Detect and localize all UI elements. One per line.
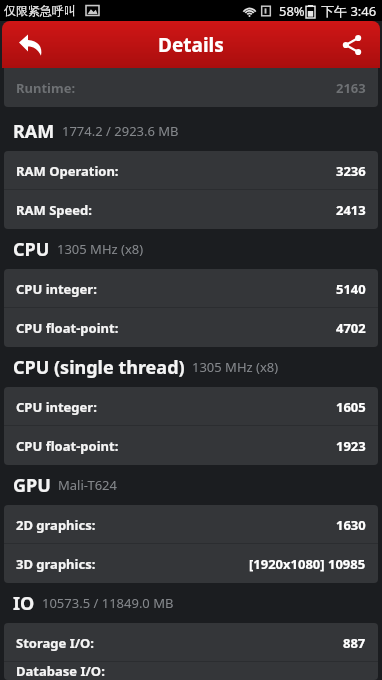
staticText: 下午 3:46 bbox=[321, 2, 377, 20]
button[interactable]: RAM Speed: bbox=[4, 190, 378, 229]
staticText: 58% bbox=[279, 2, 305, 20]
staticText: RAM Speed: bbox=[16, 201, 92, 219]
staticText: CPU float-point: bbox=[16, 437, 119, 455]
staticText: Mali-T624 bbox=[58, 476, 117, 494]
staticText: 887 bbox=[343, 634, 366, 652]
staticText: 1774.2 / 2923.6 MB bbox=[62, 122, 179, 140]
staticText: 1923 bbox=[336, 437, 366, 455]
staticText: 仅限紧急呼叫 bbox=[4, 3, 76, 18]
staticText: 1305 MHz (x8) bbox=[57, 240, 144, 258]
staticText: Storage I/O: bbox=[16, 634, 95, 652]
staticText: CPU (single thread) bbox=[13, 355, 185, 380]
button[interactable]: Storage I/O: bbox=[4, 623, 378, 662]
staticText: RAM Operation: bbox=[16, 162, 119, 180]
button[interactable]: CPU integer: bbox=[4, 387, 378, 426]
button[interactable]: Database I/O: bbox=[4, 662, 378, 680]
staticText: Runtime: bbox=[16, 79, 76, 97]
staticText: Details bbox=[158, 32, 224, 58]
button[interactable]: 3D graphics: bbox=[4, 544, 378, 583]
button[interactable]: CPU integer: bbox=[4, 269, 378, 308]
staticText: RAM bbox=[13, 119, 55, 144]
staticText: 4702 bbox=[336, 319, 366, 337]
staticText: CPU bbox=[13, 237, 50, 262]
staticText: 1605 bbox=[336, 398, 366, 416]
button[interactable]: CPU float-point: bbox=[4, 308, 378, 347]
button[interactable]: 2D graphics: bbox=[4, 505, 378, 544]
staticText: 1630 bbox=[336, 516, 366, 534]
staticText: GPU bbox=[13, 473, 51, 498]
staticText: 2413 bbox=[336, 201, 366, 219]
button[interactable]: Runtime: bbox=[4, 68, 378, 107]
button[interactable]: Share bbox=[324, 21, 380, 68]
staticText: 10573.5 / 11849.0 MB bbox=[42, 594, 174, 612]
staticText: IO bbox=[13, 591, 35, 616]
staticText: 5140 bbox=[336, 280, 366, 298]
staticText: 2163 bbox=[336, 79, 366, 97]
staticText: 2D graphics: bbox=[16, 516, 96, 534]
staticText: CPU integer: bbox=[16, 398, 97, 416]
staticText: CPU integer: bbox=[16, 280, 97, 298]
staticText: 3236 bbox=[336, 162, 366, 180]
button[interactable]: RAM Operation: bbox=[4, 151, 378, 190]
button[interactable]: CPU float-point: bbox=[4, 426, 378, 465]
staticText: [1920x1080] 10985 bbox=[249, 555, 366, 573]
staticText: 1305 MHz (x8) bbox=[192, 358, 279, 376]
staticText: Database I/O: bbox=[16, 662, 105, 680]
staticText: 3D graphics: bbox=[16, 555, 96, 573]
button[interactable]: Back bbox=[2, 21, 58, 68]
staticText: CPU float-point: bbox=[16, 319, 119, 337]
